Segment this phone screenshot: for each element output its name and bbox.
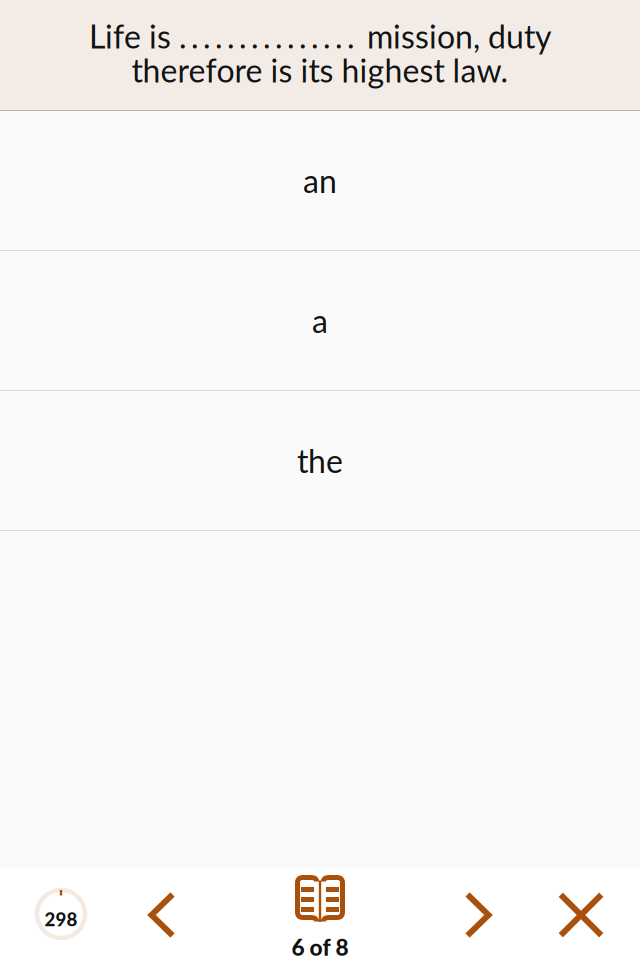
button[interactable]: Previous question [108,869,216,960]
button[interactable]: Next question [424,869,532,960]
staticText: Life is . . . . . . . . . . . . . . . mi… [89,17,551,55]
button[interactable]: a [0,251,640,390]
staticText: 6 of 8 [291,933,348,960]
staticText: 298 [44,908,77,930]
staticText: therefore is its highest law. [131,51,508,89]
staticText: a [312,301,328,340]
button[interactable]: Time remaining, 298 seconds [6,868,116,960]
button[interactable]: an [0,111,640,250]
button[interactable]: Close [526,869,636,960]
button[interactable]: Question 6 of 8 [250,876,390,960]
button[interactable]: the [0,391,640,530]
staticText: the [297,441,343,480]
staticText: an [303,161,337,200]
